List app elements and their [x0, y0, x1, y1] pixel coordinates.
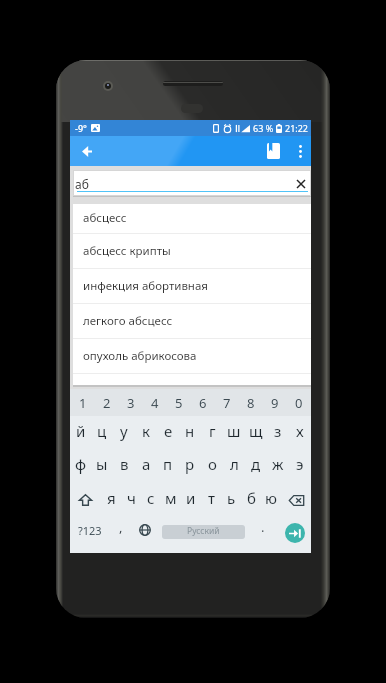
staticText: -9°: [75, 122, 87, 134]
staticText: ч: [127, 488, 136, 508]
button[interactable]: 5: [167, 389, 191, 416]
button[interactable]: д: [245, 449, 267, 483]
button[interactable]: 0: [287, 389, 311, 416]
staticText: б: [247, 488, 256, 508]
button[interactable]: с: [141, 483, 161, 517]
button[interactable]: инфекция абортивная: [73, 269, 311, 304]
staticText: ы: [96, 454, 108, 474]
staticText: и: [186, 488, 196, 508]
button[interactable]: ю: [261, 483, 281, 517]
staticText: ф: [75, 454, 87, 474]
button[interactable]: к: [135, 416, 157, 450]
button[interactable]: ф: [70, 449, 91, 483]
button[interactable]: т: [201, 483, 221, 517]
button[interactable]: 9: [263, 389, 287, 416]
button[interactable]: э: [289, 449, 311, 483]
button[interactable]: у: [113, 416, 135, 450]
button[interactable]: ы: [91, 449, 113, 483]
button[interactable]: 3: [119, 389, 143, 416]
button[interactable]: 6: [191, 389, 215, 416]
button[interactable]: .: [248, 513, 278, 547]
button[interactable]: аб: [73, 170, 311, 196]
button[interactable]: Русский: [162, 525, 245, 539]
staticText: о: [208, 454, 217, 474]
button[interactable]: опухоль абрикосова: [73, 339, 311, 374]
button[interactable]: Clear text: [296, 179, 306, 189]
button[interactable]: з: [267, 416, 289, 450]
staticText: й: [76, 421, 86, 441]
staticText: ь: [227, 488, 236, 508]
button[interactable]: ?123: [70, 513, 110, 547]
button[interactable]: 1: [70, 389, 95, 416]
staticText: с: [147, 488, 155, 508]
button[interactable]: о: [201, 449, 223, 483]
staticText: щ: [249, 421, 263, 441]
staticText: ж: [272, 454, 284, 474]
button[interactable]: 2: [95, 389, 119, 416]
button[interactable]: Shift: [70, 483, 101, 517]
staticText: 63 %: [253, 122, 274, 134]
button[interactable]: л: [223, 449, 245, 483]
button[interactable]: х: [289, 416, 311, 450]
button[interactable]: 8: [239, 389, 263, 416]
button[interactable]: я: [101, 483, 121, 517]
staticText: ш: [227, 421, 241, 441]
button[interactable]: р: [179, 449, 201, 483]
button[interactable]: е: [157, 416, 179, 450]
button[interactable]: ш: [223, 416, 245, 450]
button[interactable]: More options: [289, 136, 311, 166]
button[interactable]: Backspace: [281, 483, 311, 517]
staticText: 4: [151, 394, 159, 412]
button[interactable]: абсцесс: [73, 204, 311, 234]
staticText: 5: [175, 394, 183, 412]
button[interactable]: 4: [143, 389, 167, 416]
staticText: инфекция абортивная: [83, 278, 208, 294]
staticText: ц: [97, 421, 107, 441]
button[interactable]: ч: [121, 483, 141, 517]
button[interactable]: н: [179, 416, 201, 450]
button[interactable]: б: [241, 483, 261, 517]
staticText: з: [274, 421, 282, 441]
button[interactable]: ь: [221, 483, 241, 517]
button[interactable]: г: [201, 416, 223, 450]
staticText: ю: [265, 488, 277, 508]
button[interactable]: абсцесс крипты: [73, 234, 311, 269]
staticText: т: [208, 488, 215, 508]
staticText: 3: [127, 394, 135, 412]
staticText: 8: [247, 394, 255, 412]
staticText: м: [165, 488, 177, 508]
button[interactable]: Change language: [131, 513, 158, 547]
button[interactable]: ж: [267, 449, 289, 483]
button[interactable]: а: [135, 449, 157, 483]
staticText: я: [107, 488, 116, 508]
staticText: опухоль абрикосова: [83, 348, 197, 364]
button[interactable]: п: [157, 449, 179, 483]
staticText: Русский: [187, 525, 220, 537]
staticText: 6: [199, 394, 207, 412]
button[interactable]: Next: [278, 513, 311, 547]
button[interactable]: й: [70, 416, 91, 450]
staticText: ,: [119, 518, 123, 536]
button[interactable]: ц: [91, 416, 113, 450]
staticText: п: [163, 454, 173, 474]
staticText: 9: [271, 394, 279, 412]
staticText: .: [261, 518, 265, 536]
staticText: д: [251, 454, 261, 474]
button[interactable]: в: [113, 449, 135, 483]
button[interactable]: Back: [75, 139, 99, 163]
button[interactable]: щ: [245, 416, 267, 450]
button[interactable]: м: [161, 483, 181, 517]
staticText: к: [142, 421, 150, 441]
staticText: р: [185, 454, 195, 474]
button[interactable]: Dictionary: [260, 136, 287, 166]
staticText: 0: [295, 394, 303, 412]
staticText: 2: [103, 394, 111, 412]
button[interactable]: 7: [215, 389, 239, 416]
button[interactable]: ,: [110, 513, 131, 547]
button[interactable]: и: [181, 483, 201, 517]
staticText: у: [120, 421, 128, 441]
staticText: н: [185, 421, 195, 441]
button[interactable]: легкого абсцесс: [73, 304, 311, 339]
staticText: л: [230, 454, 239, 474]
staticText: а: [142, 454, 151, 474]
